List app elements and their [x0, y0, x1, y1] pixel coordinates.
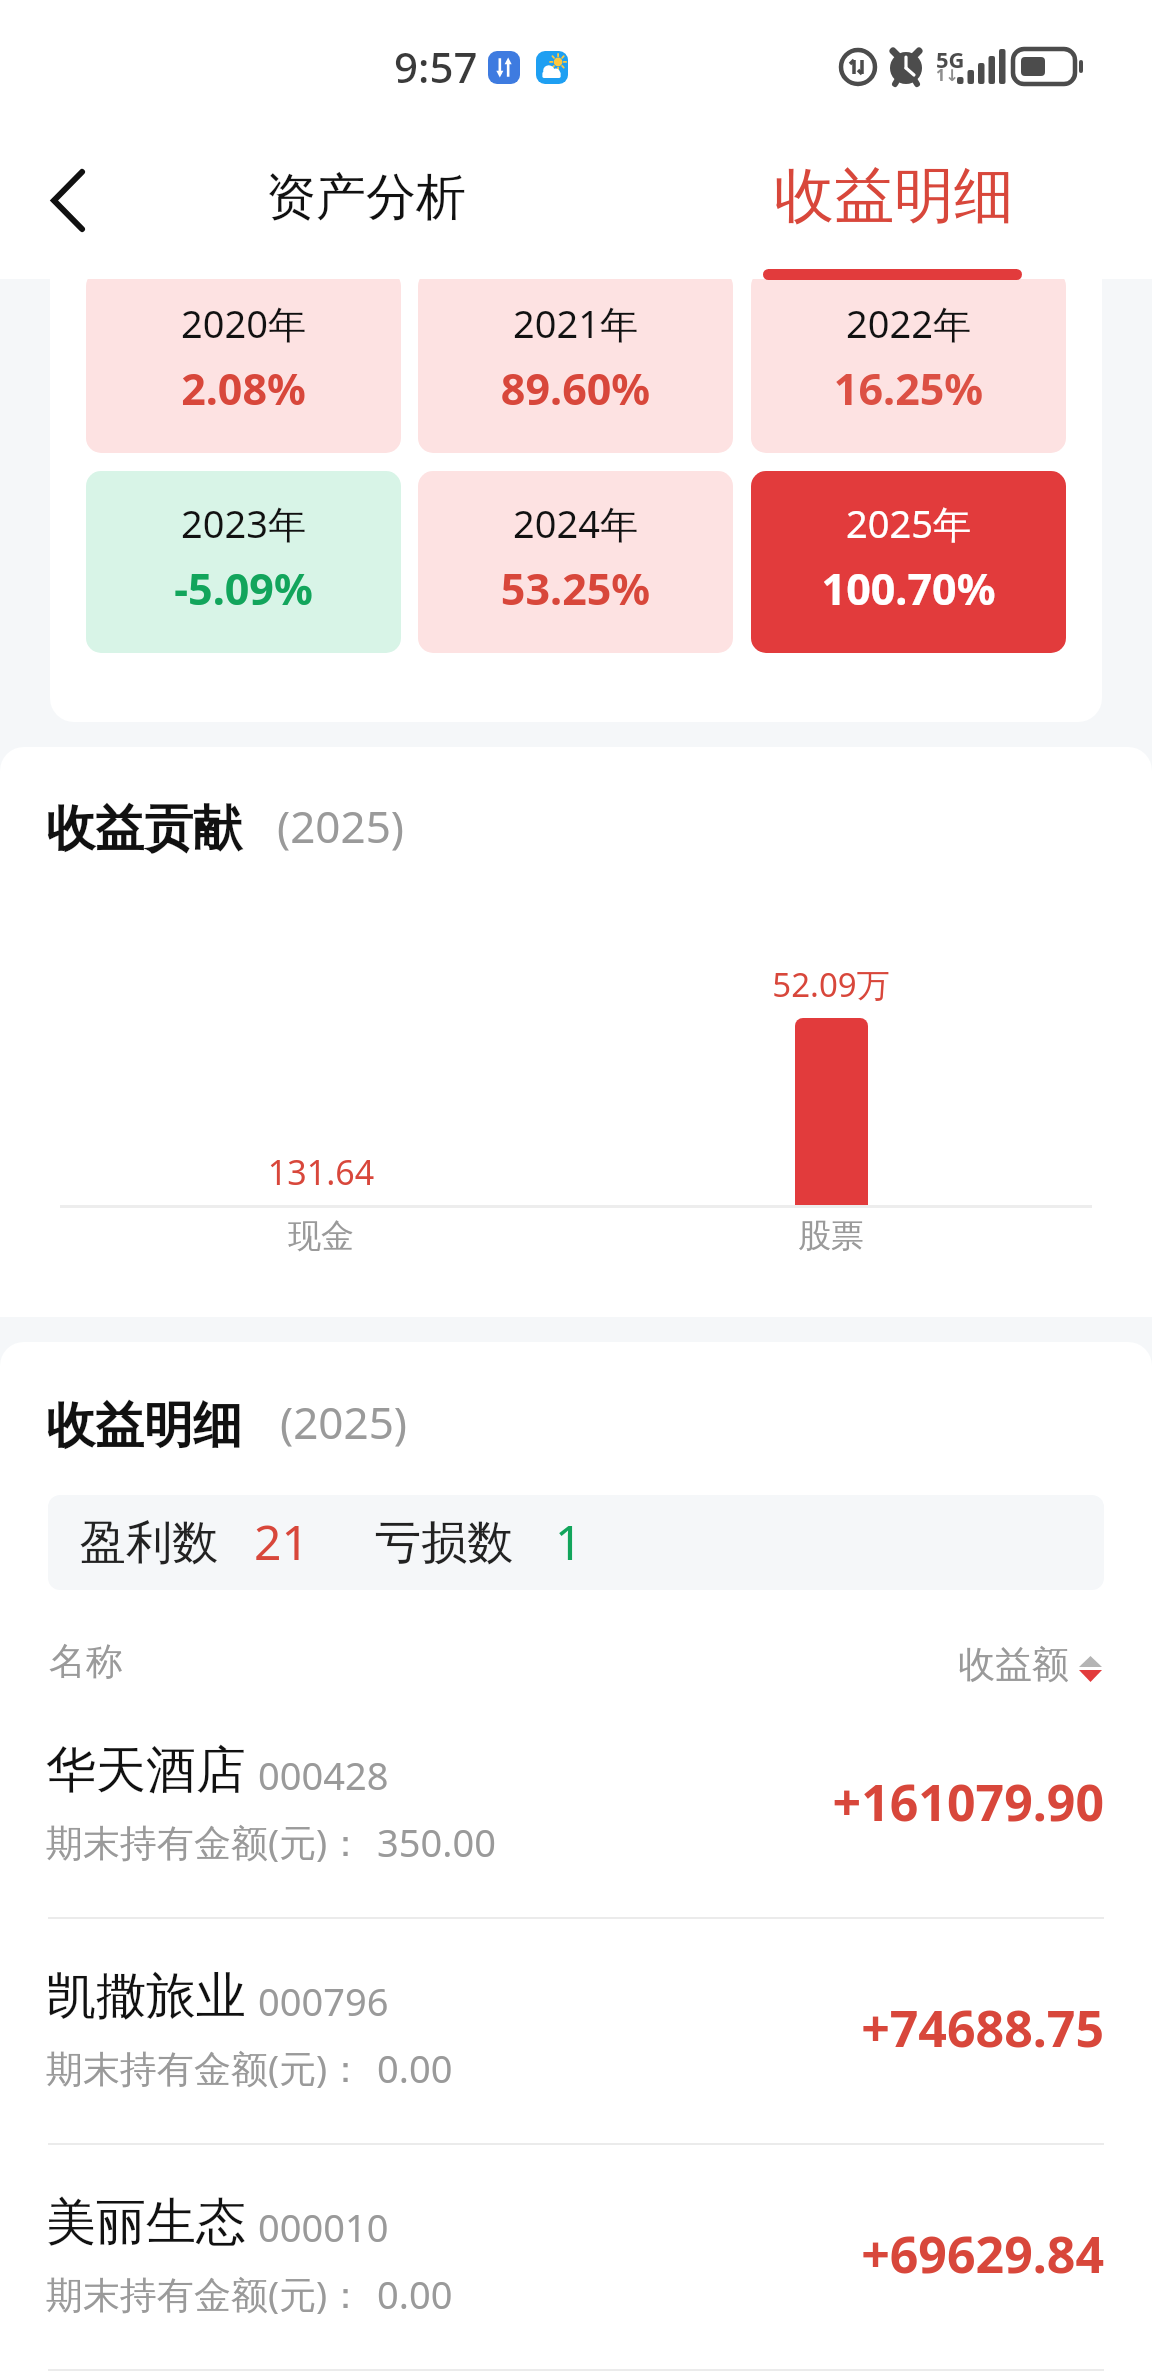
staticText: 期末持有金额(元)：	[46, 1816, 365, 1867]
staticText: 华天酒店	[46, 1739, 246, 1802]
staticText: 收益明细	[46, 1395, 242, 1457]
button[interactable]	[751, 271, 1066, 453]
staticText: 现金	[221, 1215, 421, 1257]
staticText: 期末持有金额(元)：	[46, 2268, 365, 2319]
button[interactable]	[0, 1917, 1152, 2143]
staticText: 131.64	[221, 1149, 421, 1195]
staticText: 资产分析	[266, 166, 466, 229]
staticText: 名称	[49, 1638, 123, 1685]
button[interactable]	[200, 140, 540, 250]
button[interactable]: Sort by profit	[940, 1630, 1110, 1690]
staticText: 000796	[258, 1975, 389, 2027]
button[interactable]	[0, 2143, 1152, 2369]
staticText: 2020年	[86, 297, 401, 349]
staticText: 21	[254, 1509, 309, 1574]
button[interactable]	[86, 471, 401, 653]
button[interactable]	[48, 1495, 1104, 1590]
staticText: 5G	[936, 44, 965, 74]
staticText: -5.09%	[86, 559, 401, 618]
button[interactable]	[751, 471, 1066, 653]
staticText: 2022年	[751, 297, 1066, 349]
staticText: 2.08%	[86, 359, 401, 418]
staticText: 收益贡献	[46, 798, 242, 860]
staticText: 1	[555, 1509, 583, 1574]
staticText: 0.00	[377, 2042, 453, 2094]
staticText: 9:57	[394, 38, 478, 95]
staticText: 股票	[731, 1215, 931, 1257]
staticText: +161079.90	[600, 1768, 1104, 1836]
staticText: 2025年	[751, 497, 1066, 549]
staticText: 0.00	[377, 2268, 453, 2320]
staticText: +69629.84	[600, 2220, 1104, 2288]
button[interactable]	[720, 140, 1070, 280]
staticText: 盈利数	[80, 1514, 218, 1572]
staticText: 2021年	[418, 297, 733, 349]
staticText: 000010	[258, 2201, 389, 2253]
staticText: (2025)	[277, 796, 405, 856]
button[interactable]	[418, 471, 733, 653]
staticText: +74688.75	[600, 1994, 1104, 2062]
staticText: 期末持有金额(元)：	[46, 2042, 365, 2093]
button[interactable]: Back	[16, 150, 120, 254]
staticText: 16.25%	[751, 359, 1066, 418]
staticText: 凯撒旅业	[46, 1965, 246, 2028]
button[interactable]	[86, 271, 401, 453]
staticText: 1↓	[936, 64, 959, 86]
staticText: 2023年	[86, 497, 401, 549]
staticText: 100.70%	[751, 559, 1066, 618]
staticText: 53.25%	[418, 559, 733, 618]
staticText: 亏损数	[375, 1514, 513, 1572]
button[interactable]	[0, 1691, 1152, 1917]
staticText: 2024年	[418, 497, 733, 549]
staticText: (2025)	[280, 1392, 408, 1452]
button[interactable]	[418, 271, 733, 453]
staticText: 000428	[258, 1749, 389, 1801]
staticText: 收益明细	[774, 158, 1014, 234]
staticText: 350.00	[377, 1816, 496, 1868]
staticText: 收益额	[958, 1641, 1069, 1688]
staticText: 美丽生态	[46, 2191, 246, 2254]
staticText: 52.09万	[745, 962, 917, 1007]
staticText: 89.60%	[418, 359, 733, 418]
